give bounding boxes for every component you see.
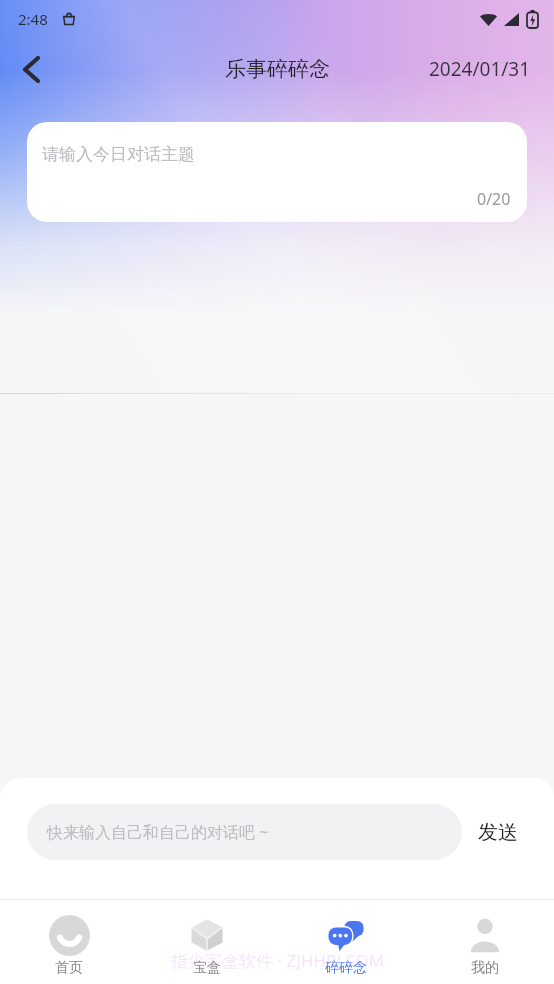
button[interactable]: Back <box>10 48 52 90</box>
staticText: 2024/01/31 <box>429 56 531 82</box>
button[interactable]: 碎碎念 <box>276 907 415 984</box>
staticText: 请输入今日对话主题 <box>42 144 195 165</box>
staticText: 首页 <box>55 959 83 977</box>
staticText: 我的 <box>471 959 499 977</box>
button[interactable]: 发送 <box>462 804 534 860</box>
button[interactable]: 我的 <box>415 907 554 984</box>
staticText: 0/20 <box>477 188 511 210</box>
button[interactable]: 宝盒 <box>138 907 276 984</box>
staticText: 发送 <box>478 820 518 845</box>
staticText: 乐事碎碎念 <box>225 56 330 82</box>
button[interactable]: 快来输入自己和自己的对话吧 ~ <box>27 804 462 860</box>
staticText: 2:48 <box>18 9 48 29</box>
staticText: 指尖宝盒软件 · ZJHHRJ.COM <box>171 949 384 972</box>
button[interactable]: 首页 <box>0 907 138 984</box>
staticText: 碎碎念 <box>325 959 367 977</box>
button[interactable]: 请输入今日对话主题 <box>27 122 527 222</box>
staticText: 宝盒 <box>193 959 221 977</box>
staticText: 快来输入自己和自己的对话吧 ~ <box>47 821 269 843</box>
